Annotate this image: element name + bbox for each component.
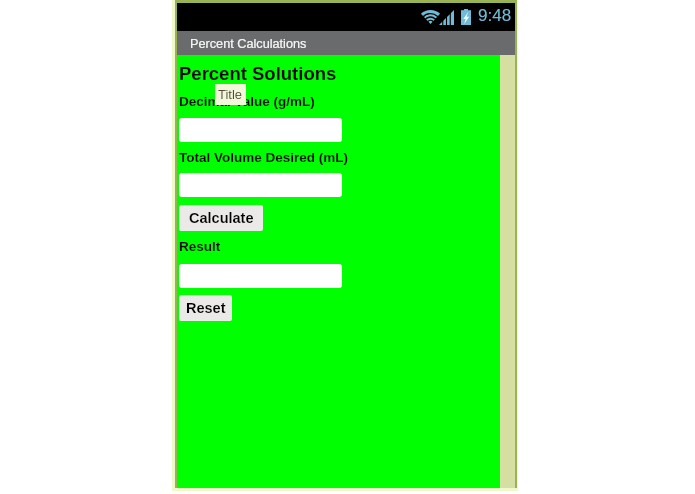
other: Mobile signal <box>439 10 454 25</box>
staticText: Reset <box>186 300 226 316</box>
staticText: 9:48 <box>478 6 512 25</box>
staticText: Result <box>179 239 221 254</box>
staticText: Percent Calculations <box>190 37 307 51</box>
other: Battery charging <box>461 9 471 25</box>
button[interactable]: Reset <box>179 295 232 321</box>
button[interactable]: Text input field <box>179 264 342 288</box>
button[interactable]: Text input field <box>179 173 342 197</box>
staticText: Title <box>218 87 243 102</box>
button[interactable]: Text input field <box>179 118 342 142</box>
button[interactable]: Calculate <box>179 205 263 231</box>
staticText: Decimal Value (g/mL) <box>179 94 315 109</box>
staticText: Calculate <box>189 210 254 226</box>
other: Wi-Fi signal <box>421 10 440 24</box>
staticText: Percent Solutions <box>179 63 337 84</box>
staticText: Total Volume Desired (mL) <box>179 150 349 165</box>
